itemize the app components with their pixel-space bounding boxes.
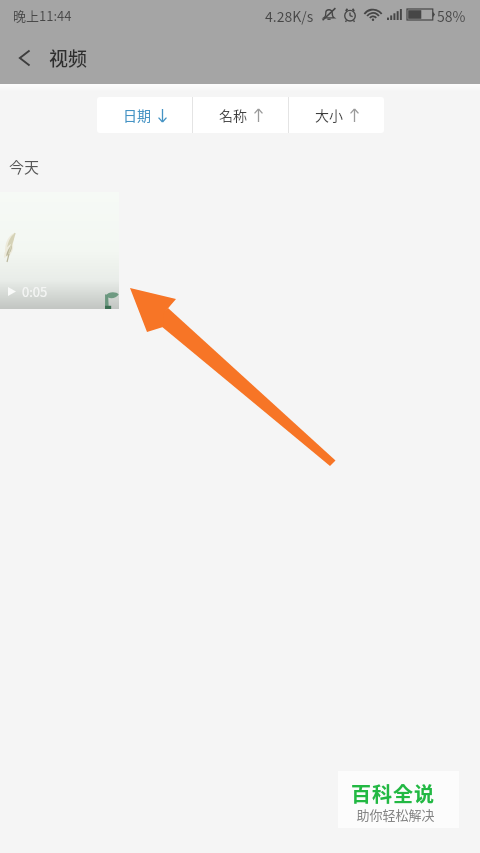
staticText: 视频 [49,44,88,72]
button[interactable]: 名称 [193,97,288,133]
staticText: 58% [437,6,466,26]
staticText: 名称 [219,105,247,125]
staticText: 百科全说 [351,779,435,808]
button[interactable]: 日期 [97,97,192,133]
staticText: 大小 [315,105,343,125]
staticText: 今天 [9,156,40,178]
staticText: 0:05 [22,282,48,301]
button[interactable]: 返回 [0,31,49,84]
staticText: 晚上11:44 [13,6,72,25]
button[interactable]: 大小 [289,97,384,133]
staticText: 4.28K/s [265,6,314,26]
staticText: 日期 [123,105,151,125]
staticText: 助你轻松解决 [356,805,435,824]
button[interactable]: 0:05 [0,192,119,309]
